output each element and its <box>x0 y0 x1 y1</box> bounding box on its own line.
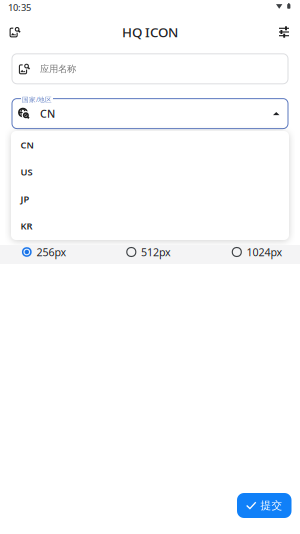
staticText: CN <box>20 139 33 151</box>
button[interactable]: CN <box>11 131 289 158</box>
button[interactable]: Image search <box>2 21 28 43</box>
button[interactable]: 1024px <box>231 242 283 261</box>
staticText: 提交 <box>260 499 282 512</box>
staticText: CN <box>40 106 55 121</box>
button[interactable]: 256px <box>21 242 67 261</box>
button[interactable]: 提交 <box>237 493 291 518</box>
button[interactable]: US <box>11 158 289 185</box>
staticText: US <box>20 166 32 178</box>
staticText: 国家/地区 <box>22 95 52 104</box>
staticText: 512px <box>141 245 171 259</box>
button[interactable]: 应用名称 <box>12 54 288 84</box>
button[interactable]: CN <box>12 99 288 129</box>
button[interactable]: JP <box>11 185 289 212</box>
staticText: HQ ICON <box>122 23 178 41</box>
staticText: 应用名称 <box>40 63 76 75</box>
button[interactable]: 512px <box>126 242 171 261</box>
staticText: 1024px <box>247 245 283 259</box>
staticText: 256px <box>37 245 67 259</box>
staticText: 10:35 <box>8 1 31 14</box>
staticText: JP <box>20 193 29 205</box>
button[interactable]: Settings <box>271 21 297 43</box>
button[interactable]: KR <box>11 212 289 239</box>
staticText: KR <box>20 220 32 232</box>
